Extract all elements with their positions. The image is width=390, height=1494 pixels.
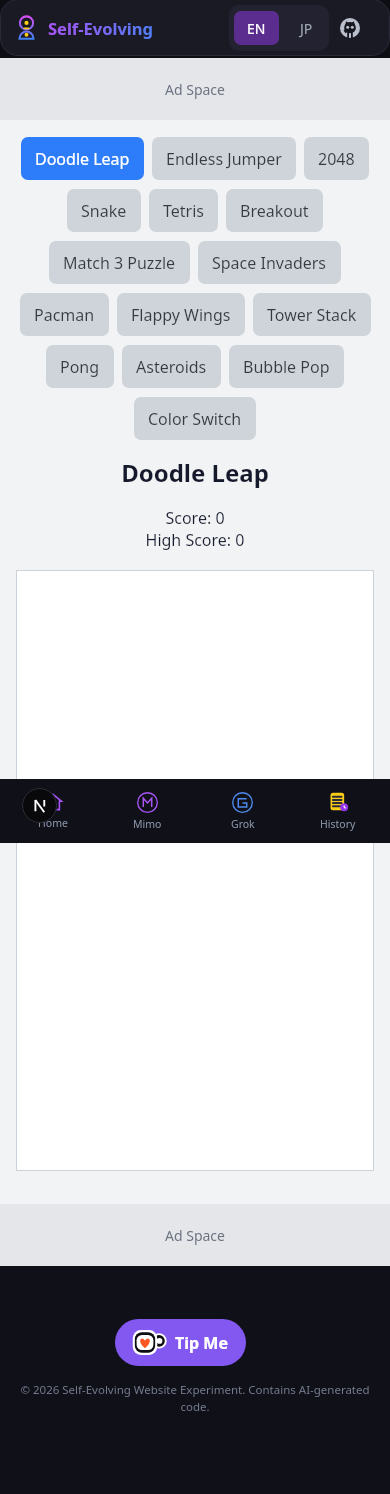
button[interactable]: Endless Jumper (152, 137, 296, 180)
staticText: Ad Space (165, 80, 225, 99)
button[interactable]: Match 3 Puzzle (49, 241, 190, 284)
staticText: Match 3 Puzzle (63, 252, 176, 274)
staticText: Bubble Pop (243, 356, 330, 378)
button[interactable]: Dev tools (22, 788, 57, 823)
staticText: Doodle Leap (0, 456, 390, 489)
staticText: Tip Me (175, 1332, 228, 1354)
staticText: Pong (60, 356, 100, 378)
staticText: Ad Space (165, 1226, 225, 1245)
button[interactable]: Space Invaders (198, 241, 341, 284)
staticText: Home (38, 816, 68, 830)
staticText: Doodle Leap (35, 148, 130, 170)
staticText: Mimo (133, 817, 162, 831)
button[interactable]: 2048 (304, 137, 369, 180)
staticText: Tetris (163, 200, 204, 222)
button[interactable]: Snake (67, 189, 141, 232)
staticText: High Score: 0 (0, 529, 390, 551)
staticText: Snake (81, 200, 127, 222)
staticText: Grok (231, 817, 255, 831)
button[interactable]: Breakout (226, 189, 323, 232)
button[interactable]: GitHub (329, 5, 371, 51)
staticText: Tower Stack (267, 304, 357, 326)
staticText: Endless Jumper (166, 148, 282, 170)
staticText: Score: 0 (0, 507, 390, 529)
staticText: © 2026 Self-Evolving Website Experiment.… (12, 1382, 378, 1415)
staticText: Flappy Wings (131, 304, 231, 326)
staticText: JP (300, 19, 313, 38)
button[interactable]: Tetris (149, 189, 218, 232)
button[interactable]: Pong (46, 345, 114, 388)
button[interactable]: EN (234, 11, 279, 45)
button[interactable]: Home (5, 779, 100, 843)
button[interactable]: Tower Stack (253, 293, 371, 336)
staticText: Breakout (240, 200, 309, 222)
staticText: 2048 (318, 148, 355, 170)
staticText: Space Invaders (212, 252, 327, 274)
staticText: EN (247, 19, 266, 38)
button[interactable]: Tip Me (115, 1319, 246, 1366)
button[interactable]: Pacman (20, 293, 109, 336)
button[interactable]: Doodle Leap (21, 137, 144, 180)
button[interactable]: JP (284, 5, 329, 51)
button[interactable]: Color Switch (134, 397, 256, 440)
button[interactable]: Grok (195, 779, 290, 843)
staticText: History (320, 817, 356, 831)
button[interactable]: Mimo (100, 779, 195, 843)
button[interactable]: Asteroids (122, 345, 221, 388)
button[interactable]: Flappy Wings (117, 293, 245, 336)
staticText: Pacman (34, 304, 95, 326)
button[interactable]: History (290, 779, 385, 843)
button[interactable]: Bubble Pop (229, 345, 344, 388)
staticText: Color Switch (148, 408, 242, 430)
staticText: Asteroids (136, 356, 207, 378)
staticText: Self-Evolving (48, 17, 153, 39)
